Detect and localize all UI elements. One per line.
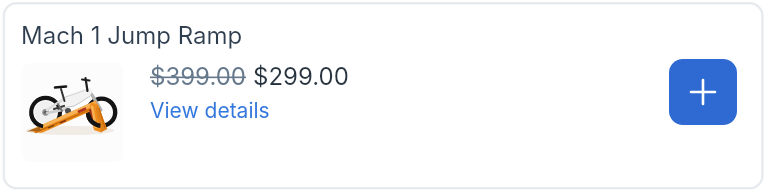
staticText: Mach 1 Jump Ramp [21, 21, 243, 50]
button[interactable]: Add to cart [669, 59, 737, 125]
button[interactable]: View details [150, 98, 270, 123]
staticText: $299.00 [253, 62, 349, 91]
staticText: View details [150, 98, 270, 123]
staticText: $399.00 [150, 62, 246, 91]
